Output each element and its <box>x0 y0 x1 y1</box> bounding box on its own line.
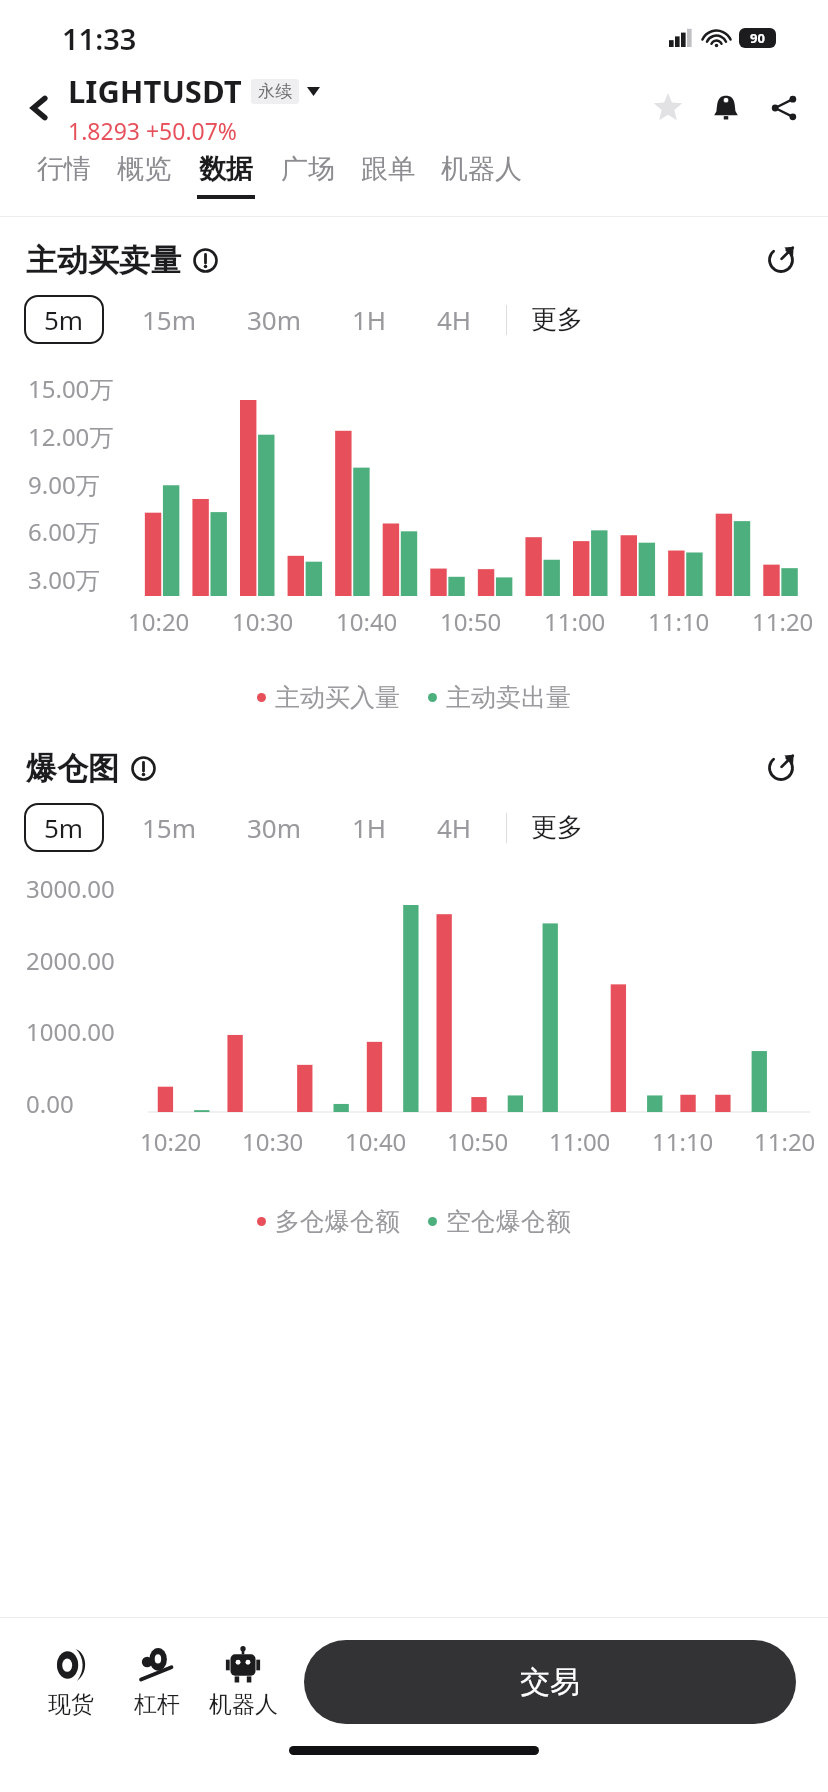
staticText: 5m <box>44 810 84 845</box>
staticText: 10:40 <box>336 605 398 638</box>
staticText: 3.00万 <box>28 563 100 596</box>
staticText: 5m <box>44 302 84 337</box>
button[interactable]: Expand <box>760 239 802 281</box>
staticText: 空仓爆仓额 <box>446 1206 571 1237</box>
staticText: 11:00 <box>544 605 606 638</box>
staticText: 1H <box>352 810 387 845</box>
staticText: 爆仓图 <box>26 749 119 788</box>
staticText: 2000.00 <box>26 944 115 977</box>
staticText: 12.00万 <box>28 420 114 453</box>
staticText: 10:50 <box>447 1125 509 1158</box>
staticText: 机器人 <box>209 1690 278 1719</box>
staticText: 4H <box>437 302 472 337</box>
staticText: 行情 <box>37 152 91 186</box>
button[interactable]: 交易 <box>304 1640 796 1724</box>
button[interactable]: 机器人 <box>428 152 535 195</box>
button[interactable]: 1H <box>340 293 399 346</box>
staticText: 1H <box>352 302 387 337</box>
staticText: 永续 <box>258 81 292 102</box>
button[interactable]: 杠杆 <box>114 1642 200 1723</box>
staticText: 15m <box>142 302 197 337</box>
staticText: 交易 <box>520 1663 580 1701</box>
button[interactable]: Info <box>127 752 159 784</box>
staticText: 1000.00 <box>26 1015 115 1048</box>
staticText: 15.00万 <box>28 372 114 405</box>
button[interactable]: 行情 <box>24 152 104 195</box>
staticText: 11:20 <box>752 605 814 638</box>
button[interactable]: 15m <box>130 293 209 346</box>
staticText: 0.00 <box>26 1087 74 1120</box>
button[interactable]: 30m <box>235 801 314 854</box>
button[interactable]: 跟单 <box>348 152 428 195</box>
button[interactable]: 30m <box>235 293 314 346</box>
staticText: 4H <box>437 810 472 845</box>
button[interactable]: 4H <box>425 293 484 346</box>
button[interactable]: 更多 <box>531 811 583 844</box>
button[interactable]: 5m <box>24 295 104 344</box>
button[interactable]: 更多 <box>531 303 583 336</box>
staticText: 现货 <box>48 1690 94 1719</box>
button[interactable]: 15m <box>130 801 209 854</box>
button[interactable]: 广场 <box>268 152 348 195</box>
staticText: 11:10 <box>648 605 710 638</box>
staticText: 3000.00 <box>26 872 115 905</box>
button[interactable]: Back <box>14 82 66 134</box>
staticText: 10:20 <box>128 605 190 638</box>
staticText: 11:33 <box>62 19 137 58</box>
staticText: 机器人 <box>441 152 522 186</box>
staticText: 30m <box>247 810 302 845</box>
staticText: 杠杆 <box>134 1690 180 1719</box>
button[interactable]: 概览 <box>104 152 184 195</box>
staticText: 10:40 <box>345 1125 407 1158</box>
staticText: 11:00 <box>549 1125 611 1158</box>
staticText: 概览 <box>117 152 171 186</box>
staticText: 9.00万 <box>28 468 100 501</box>
button[interactable]: Expand <box>760 747 802 789</box>
button[interactable]: 数据 <box>184 152 268 199</box>
button[interactable]: 4H <box>425 801 484 854</box>
staticText: 90 <box>750 29 765 47</box>
button[interactable]: 1H <box>340 801 399 854</box>
staticText: 6.00万 <box>28 515 100 548</box>
staticText: 11:20 <box>754 1125 816 1158</box>
button[interactable]: Info <box>189 244 221 276</box>
staticText: 主动买卖量 <box>26 241 181 280</box>
button[interactable]: 机器人 <box>200 1642 286 1723</box>
staticText: 10:30 <box>232 605 294 638</box>
staticText: 数据 <box>199 152 253 186</box>
staticText: 10:30 <box>242 1125 304 1158</box>
staticText: 30m <box>247 302 302 337</box>
staticText: 1.8293 +50.07% <box>68 115 237 146</box>
button[interactable]: 现货 <box>28 1642 114 1723</box>
staticText: LIGHTUSDT <box>68 70 242 112</box>
staticText: 更多 <box>531 303 583 336</box>
staticText: 主动卖出量 <box>446 682 571 713</box>
button[interactable]: 5m <box>24 803 104 852</box>
staticText: 10:20 <box>140 1125 202 1158</box>
button[interactable]: Share <box>758 82 810 134</box>
staticText: 主动买入量 <box>275 682 400 713</box>
staticText: 广场 <box>281 152 335 186</box>
staticText: 更多 <box>531 811 583 844</box>
button[interactable]: Favorite <box>642 82 694 134</box>
staticText: 多仓爆仓额 <box>275 1206 400 1237</box>
staticText: 15m <box>142 810 197 845</box>
staticText: 10:50 <box>440 605 502 638</box>
staticText: 跟单 <box>361 152 415 186</box>
staticText: 11:10 <box>652 1125 714 1158</box>
button[interactable]: Alert <box>700 82 752 134</box>
